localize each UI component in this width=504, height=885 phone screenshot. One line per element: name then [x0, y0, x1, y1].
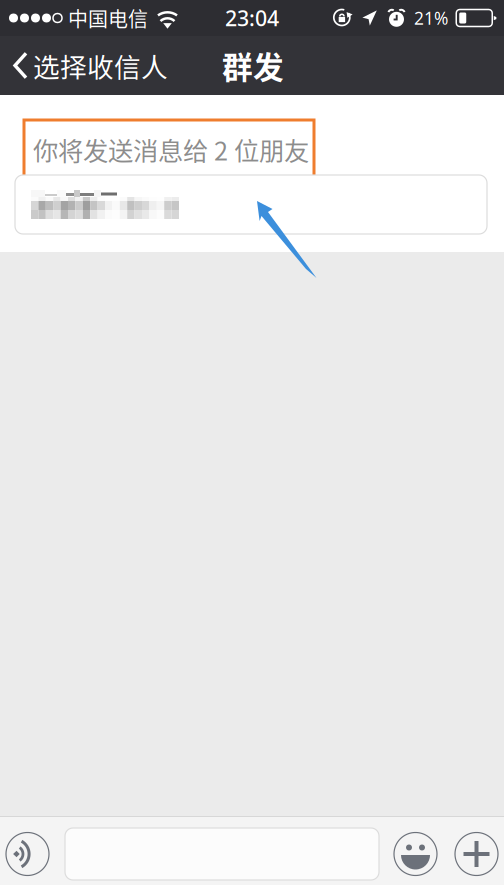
button[interactable]: More: [455, 832, 498, 875]
staticText: 群发: [222, 43, 284, 88]
staticText: 21%: [414, 6, 448, 29]
staticText: 中国电信: [68, 3, 148, 32]
staticText: 你将发送消息给 2 位朋友: [33, 131, 309, 168]
staticText: 选择收信人: [33, 46, 168, 85]
button[interactable]: Voice input: [6, 832, 49, 875]
button[interactable]: Emoji: [394, 832, 437, 875]
staticText: 23:04: [225, 4, 279, 32]
button[interactable]: 选择收信人: [0, 36, 182, 95]
